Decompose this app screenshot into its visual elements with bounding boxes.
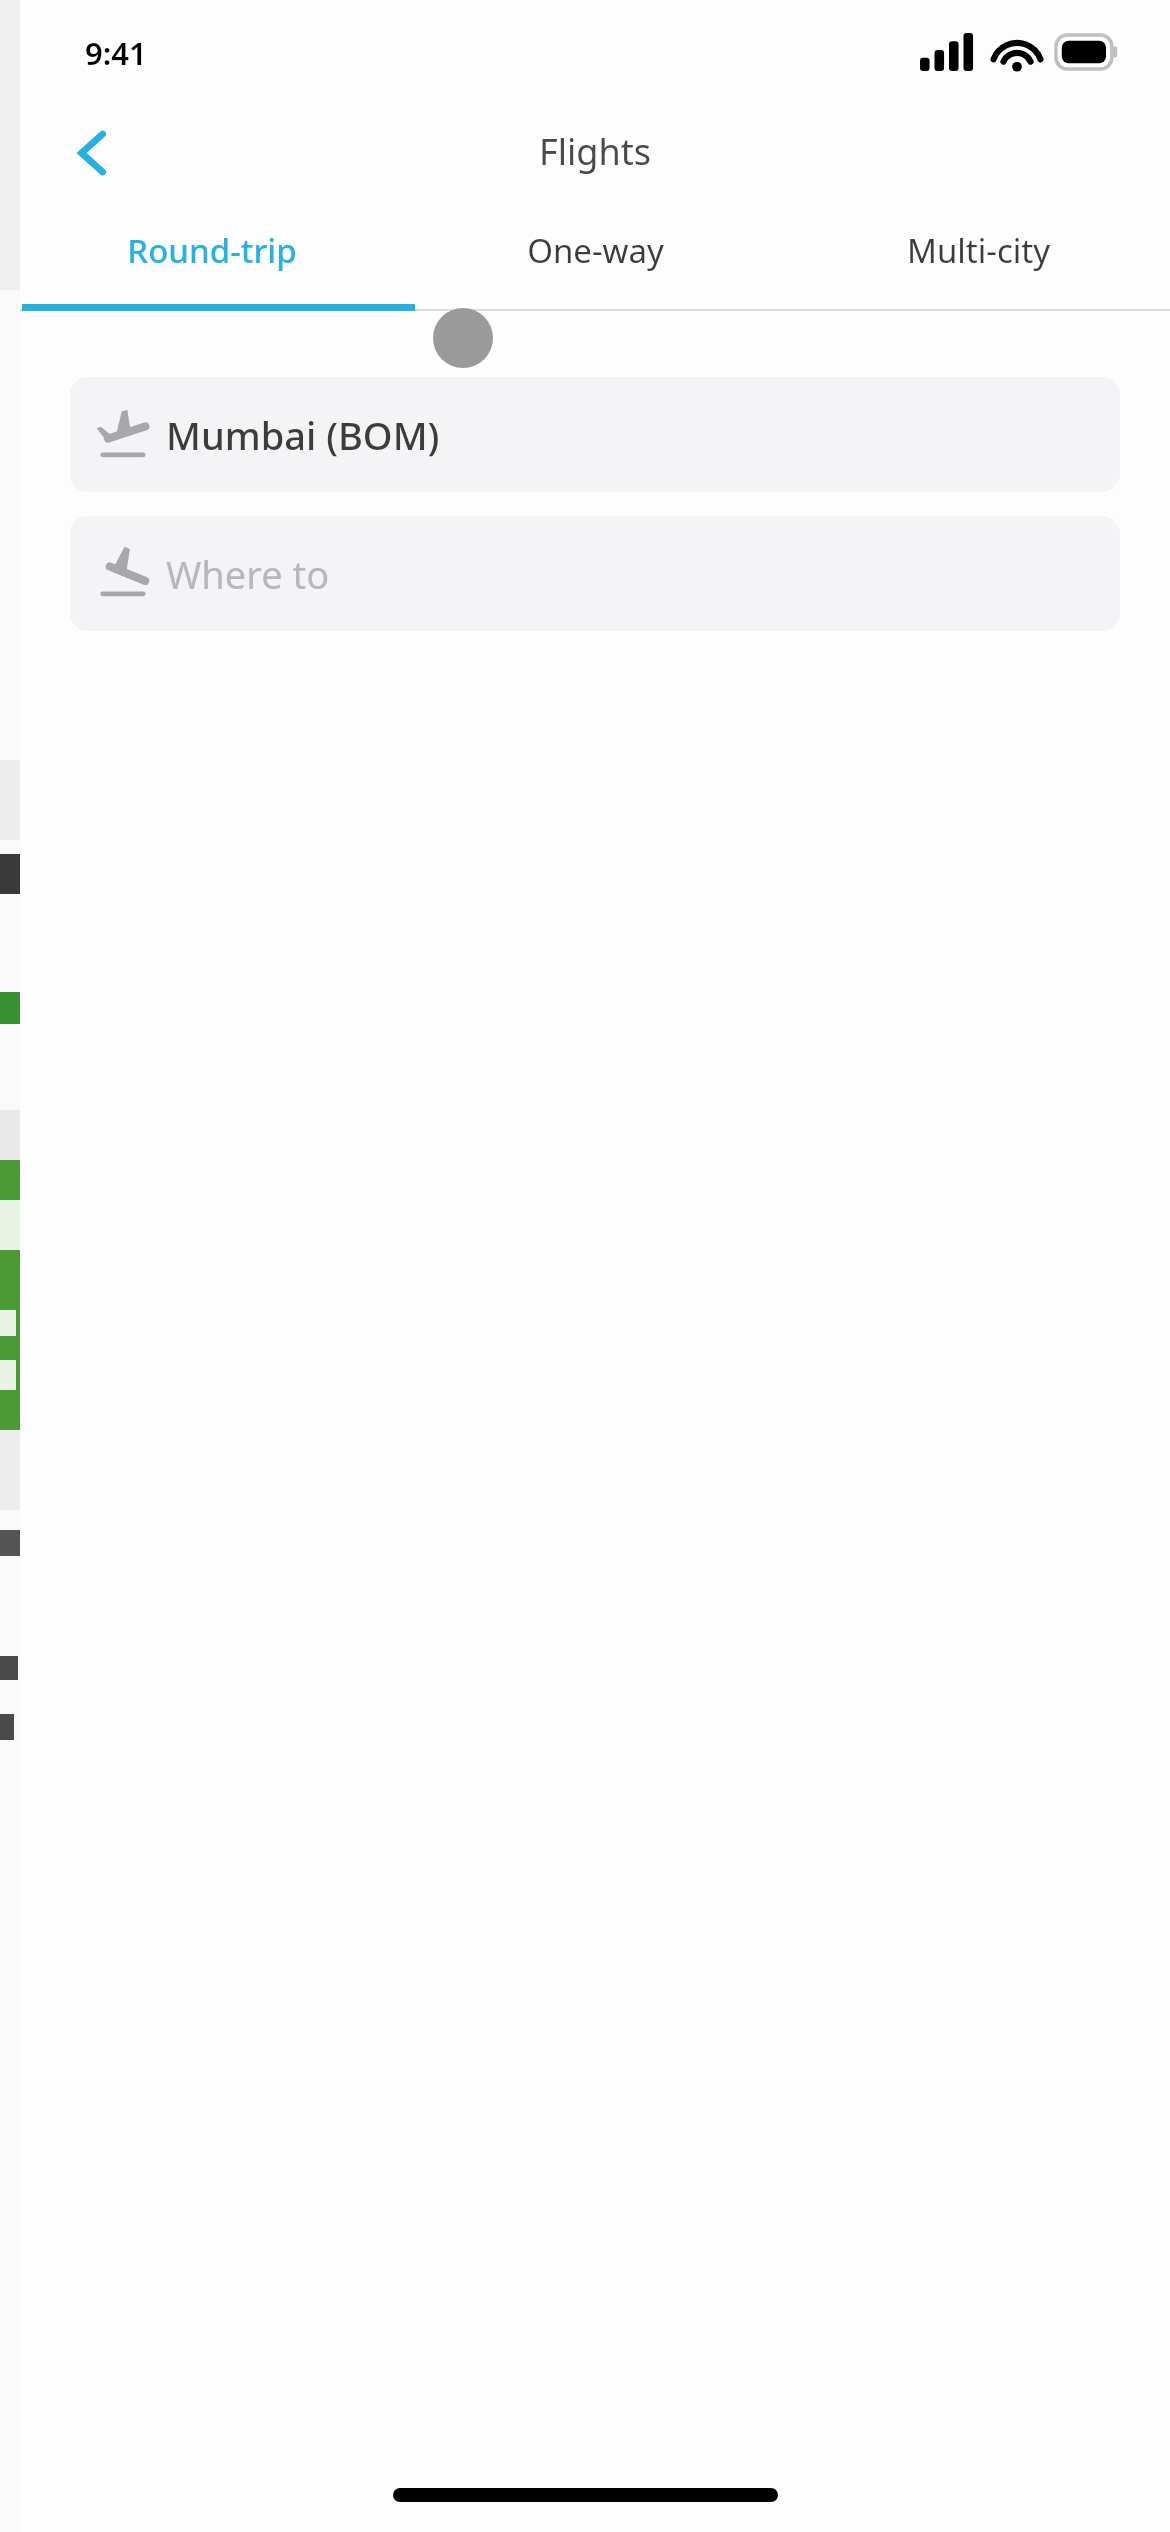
button[interactable]: One-way xyxy=(404,206,787,311)
button[interactable]: Round-trip xyxy=(20,206,404,311)
staticText: One-way xyxy=(527,228,664,273)
button[interactable]: Multi-city xyxy=(787,206,1170,311)
staticText: Flights xyxy=(539,127,651,176)
staticText: Where to xyxy=(166,548,330,600)
button[interactable]: Mumbai (BOM) xyxy=(70,377,1120,492)
button[interactable]: Back xyxy=(48,108,138,198)
staticText: Round-trip xyxy=(127,228,297,273)
staticText: 9:41 xyxy=(85,32,147,74)
staticText: Mumbai (BOM) xyxy=(166,409,440,461)
staticText: Multi-city xyxy=(907,228,1050,273)
button[interactable]: Where to xyxy=(70,516,1120,631)
